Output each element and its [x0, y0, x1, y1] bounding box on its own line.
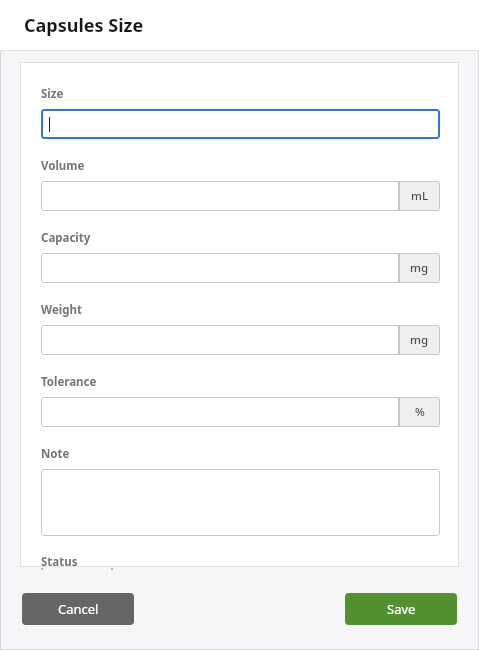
button[interactable] — [41, 109, 440, 139]
staticText: Weight — [41, 302, 82, 318]
staticText: mg — [410, 260, 429, 276]
staticText: Tolerance — [41, 374, 97, 390]
button[interactable]: Save — [345, 593, 457, 625]
staticText: Capacity — [41, 230, 91, 246]
button[interactable] — [41, 325, 399, 355]
button[interactable] — [41, 397, 399, 427]
button[interactable] — [41, 181, 399, 211]
button[interactable]: Cancel — [22, 593, 134, 625]
staticText: Capsules Size — [24, 13, 144, 38]
staticText: Volume — [41, 158, 85, 174]
staticText: Size — [41, 86, 64, 102]
staticText: Status — [41, 554, 78, 567]
button[interactable] — [41, 469, 440, 536]
staticText: mL — [411, 188, 429, 204]
staticText: Cancel — [58, 600, 99, 618]
button[interactable] — [41, 253, 399, 283]
staticText: Save — [387, 600, 416, 618]
staticText: mg — [410, 332, 429, 348]
staticText: % — [415, 404, 425, 420]
staticText: Note — [41, 446, 70, 462]
